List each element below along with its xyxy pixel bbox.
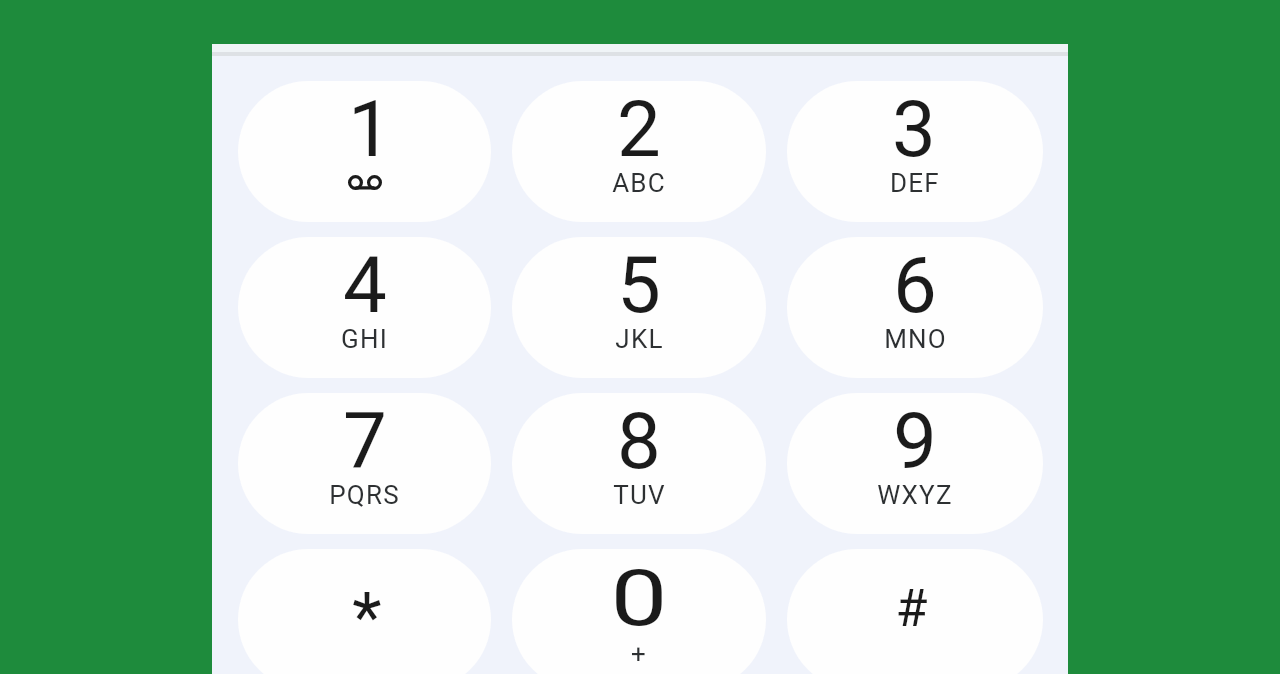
staticText: 4 [343, 240, 387, 331]
staticText: 1 [348, 84, 392, 175]
staticText: 6 [893, 240, 937, 331]
button[interactable]: Dial 5 JKL [512, 237, 766, 378]
staticText: MNO [884, 324, 947, 354]
button[interactable]: Dial 1, voicemail [238, 81, 491, 222]
staticText: 2 [617, 84, 661, 175]
staticText: 5 [617, 240, 661, 331]
button[interactable]: Dial 3 DEF [787, 81, 1043, 222]
staticText: 9 [893, 396, 937, 487]
staticText: GHI [341, 324, 388, 354]
staticText: * [352, 578, 382, 658]
staticText: 7 [343, 396, 387, 487]
staticText: PQRS [329, 480, 400, 510]
staticText: + [631, 639, 647, 669]
staticText: 3 [892, 84, 936, 175]
button[interactable]: Dial 0 plus [512, 549, 766, 674]
button[interactable]: Dial pound [787, 549, 1043, 674]
staticText: 8 [617, 396, 661, 487]
button[interactable]: Dial 4 GHI [238, 237, 491, 378]
staticText: WXYZ [877, 480, 953, 510]
button[interactable]: Dial 6 MNO [787, 237, 1043, 378]
staticText: TUV [613, 480, 666, 510]
staticText: # [895, 578, 928, 639]
button[interactable]: Dial 7 PQRS [238, 393, 491, 534]
button[interactable]: Dial star [238, 549, 491, 674]
staticText: 0 [610, 553, 668, 644]
button[interactable]: Dial 9 WXYZ [787, 393, 1043, 534]
button[interactable]: Dial 8 TUV [512, 393, 766, 534]
button[interactable]: Dial 2 ABC [512, 81, 766, 222]
staticText: DEF [890, 168, 940, 198]
staticText: JKL [615, 324, 664, 354]
staticText: ABC [612, 168, 666, 198]
